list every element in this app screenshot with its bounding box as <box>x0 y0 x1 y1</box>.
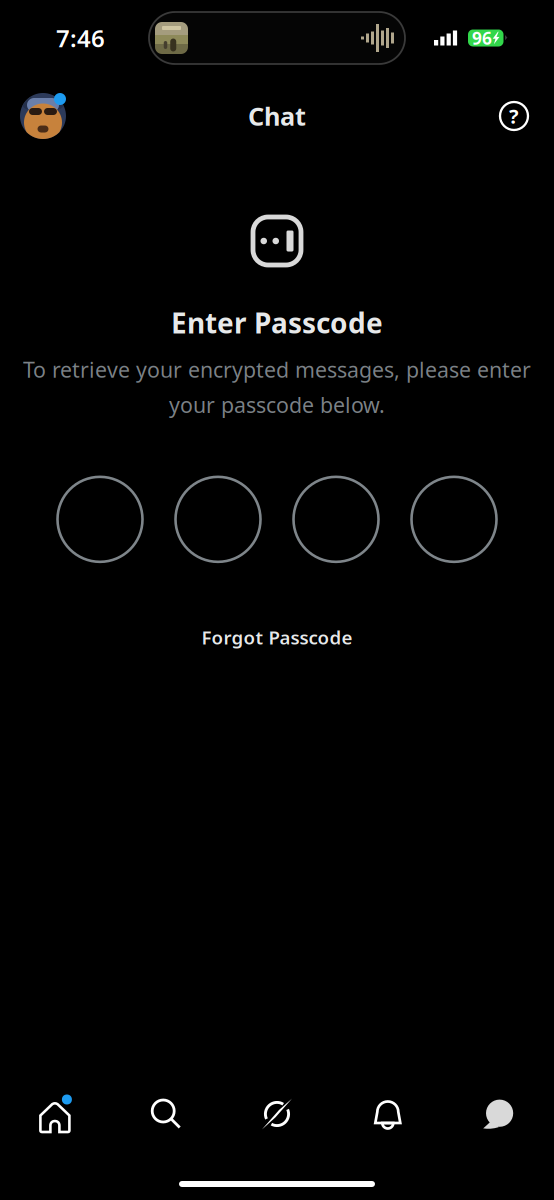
staticText: 7:46 <box>56 22 105 54</box>
staticText: Chat <box>248 99 306 133</box>
button[interactable]: Forgot Passcode <box>187 617 366 658</box>
button[interactable]: Home <box>0 1082 111 1146</box>
staticText: Forgot Passcode <box>201 625 352 650</box>
staticText: To retrieve your encrypted messages, ple… <box>23 355 531 383</box>
button[interactable]: Notifications <box>332 1082 443 1146</box>
button[interactable]: Profile <box>0 85 68 147</box>
button[interactable]: Grok <box>222 1082 332 1146</box>
button[interactable]: Search <box>111 1082 222 1146</box>
staticText: ? <box>509 103 519 129</box>
button[interactable]: Help <box>498 94 554 138</box>
staticText: your passcode below. <box>169 390 385 419</box>
staticText: Enter Passcode <box>171 304 383 341</box>
staticText: 96 <box>472 26 492 49</box>
button[interactable]: Messages <box>443 1082 554 1146</box>
